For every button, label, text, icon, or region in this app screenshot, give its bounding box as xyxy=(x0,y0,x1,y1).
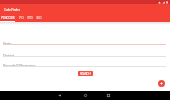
button[interactable]: PINCODE xyxy=(0,14,15,22)
staticText: ISD xyxy=(36,16,42,20)
staticText: STD xyxy=(27,16,33,20)
button[interactable]: Recents xyxy=(102,91,114,100)
staticText: Pincode/Officename xyxy=(3,63,36,68)
button[interactable]: ISD xyxy=(35,14,43,22)
staticText: PINCODE xyxy=(1,16,15,20)
button[interactable]: Home xyxy=(79,91,91,100)
staticText: District xyxy=(3,53,15,58)
button[interactable]: SEARCH xyxy=(78,71,93,76)
staticText: Code Finder xyxy=(4,8,20,12)
staticText: PO xyxy=(19,16,24,20)
button[interactable]: Back xyxy=(53,91,65,100)
staticText: State xyxy=(3,41,12,46)
staticText: SEARCH xyxy=(80,72,91,76)
button[interactable]: STD xyxy=(26,14,34,22)
button[interactable]: Add xyxy=(158,80,165,87)
button[interactable]: PO xyxy=(17,14,25,22)
